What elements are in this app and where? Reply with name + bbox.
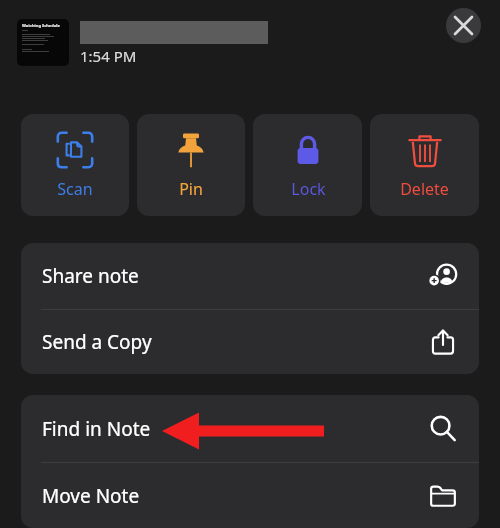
staticText: 1:54 PM — [80, 46, 137, 66]
staticText: Watching Schedule — [22, 23, 60, 28]
other: Send a Copy — [428, 327, 458, 357]
staticText: Send a Copy — [42, 329, 428, 355]
button[interactable]: Share note — [21, 243, 479, 309]
staticText: Delete — [400, 178, 449, 200]
button[interactable]: Scan — [21, 114, 129, 216]
staticText: Scan — [57, 178, 93, 200]
staticText: Lock — [291, 178, 326, 200]
button[interactable]: Delete — [370, 114, 479, 216]
button[interactable]: Close — [446, 8, 481, 43]
staticText: Pin — [179, 178, 203, 200]
button[interactable]: Watching Schedule — [17, 19, 69, 66]
staticText: Move Note — [42, 483, 428, 509]
button[interactable]: Pin — [137, 114, 245, 216]
other: Move Note — [428, 481, 458, 511]
button[interactable]: Lock — [253, 114, 362, 216]
button[interactable]: Find in Note — [21, 395, 479, 462]
other: Share note — [428, 261, 458, 291]
other: Find in Note — [428, 414, 458, 444]
staticText: Find in Note — [42, 416, 428, 442]
button[interactable]: Send a Copy — [21, 310, 479, 374]
button[interactable]: Move Note — [21, 463, 479, 528]
staticText: Share note — [42, 263, 428, 289]
